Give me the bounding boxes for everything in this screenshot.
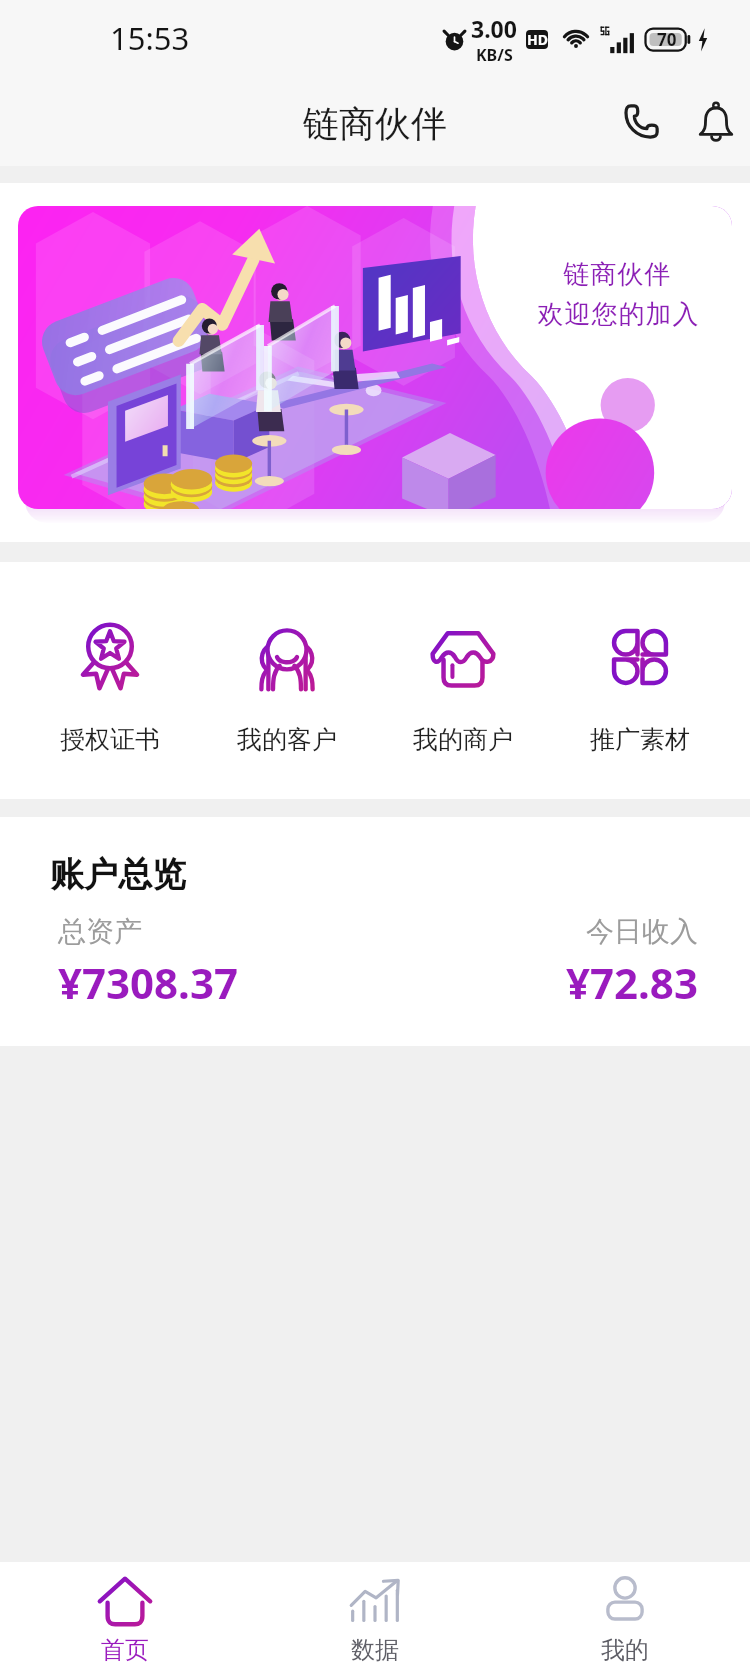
button[interactable]: 授权证书 bbox=[22, 623, 198, 755]
staticText: 3.00 bbox=[471, 13, 517, 44]
staticText: 推广素材 bbox=[590, 724, 690, 755]
staticText: ¥7308.37 bbox=[58, 954, 238, 1011]
staticText: 今日收入 bbox=[586, 914, 698, 949]
button[interactable]: 我的 bbox=[500, 1562, 750, 1667]
staticText: 欢迎您的加入 bbox=[537, 298, 699, 331]
staticText: 数据 bbox=[351, 1635, 399, 1665]
staticText: KB/S bbox=[476, 44, 513, 66]
staticText: ¥72.83 bbox=[566, 954, 698, 1011]
button[interactable]: 首页 bbox=[0, 1562, 250, 1667]
staticText: 链商伙伴 bbox=[303, 101, 447, 146]
staticText: 账户总览 bbox=[50, 853, 186, 896]
button[interactable]: 我的客户 bbox=[199, 623, 375, 755]
button[interactable]: Notifications bbox=[685, 91, 747, 153]
staticText: 首页 bbox=[101, 1635, 149, 1665]
staticText: 链商伙伴 bbox=[563, 258, 671, 291]
staticText: 总资产 bbox=[58, 914, 142, 949]
button[interactable]: 链商伙伴 bbox=[18, 206, 732, 509]
button[interactable]: 数据 bbox=[250, 1562, 500, 1667]
staticText: HD bbox=[527, 30, 548, 49]
staticText: 70 bbox=[657, 28, 677, 51]
staticText: 我的商户 bbox=[413, 724, 513, 755]
staticText: 授权证书 bbox=[60, 724, 160, 755]
button[interactable]: 我的商户 bbox=[375, 623, 551, 755]
button[interactable]: 推广素材 bbox=[552, 623, 728, 755]
staticText: 15:53 bbox=[110, 17, 190, 59]
staticText: 我的 bbox=[601, 1635, 649, 1665]
staticText: 我的客户 bbox=[237, 724, 337, 755]
button[interactable]: Call bbox=[610, 91, 672, 153]
